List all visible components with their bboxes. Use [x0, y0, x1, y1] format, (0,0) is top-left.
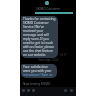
staticText: Now texting SKIMO	[23, 82, 51, 86]
staticText: Your satisfaction were you with your	[23, 65, 52, 73]
staticText: interaction? Rate us	[23, 73, 53, 77]
staticText: Thanks for contacting SKIMO Customer Ser…	[23, 17, 56, 57]
button[interactable]: Action	[32, 89, 35, 92]
button[interactable]: Action	[22, 89, 25, 92]
button[interactable]: Contact avatar	[45, 1, 49, 5]
button[interactable]: Send	[70, 89, 73, 92]
staticText: Yesterday 14:52	[38, 58, 59, 62]
button[interactable]: Action	[27, 89, 30, 92]
button[interactable]: Emoji	[64, 89, 67, 92]
button[interactable]: Thanks for contacting SKIMO Customer Ser…	[21, 16, 58, 58]
button[interactable]: Your satisfaction were you with your	[21, 64, 57, 78]
staticText: 09:37	[60, 53, 67, 57]
staticText: SKIMO Customer	[36, 7, 61, 11]
